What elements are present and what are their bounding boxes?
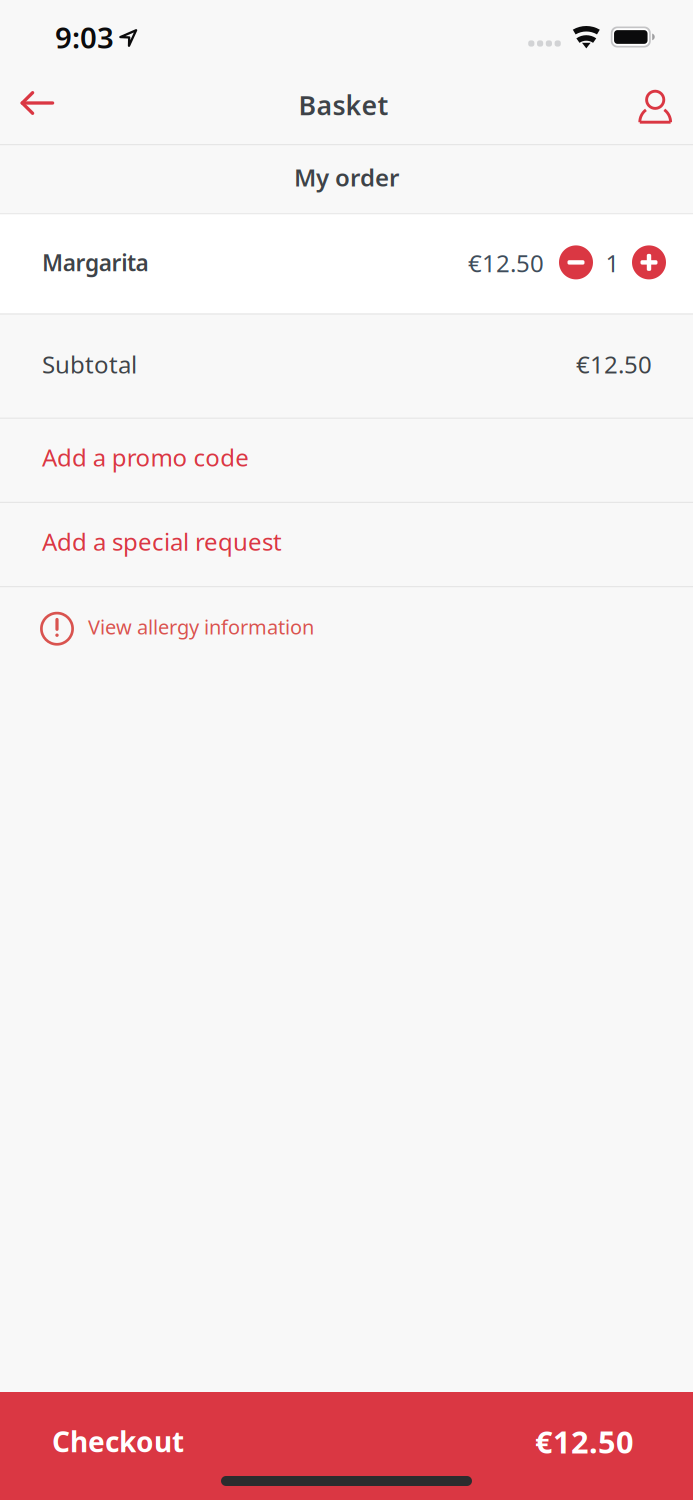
staticText: My order: [294, 161, 399, 193]
staticText: €12.50: [535, 1421, 634, 1462]
button[interactable]: Back: [0, 77, 78, 134]
button[interactable]: Account: [614, 77, 693, 135]
staticText: Subtotal: [42, 348, 137, 380]
staticText: 9:03: [55, 17, 114, 56]
staticText: €12.50: [576, 348, 652, 380]
staticText: 1: [605, 247, 619, 279]
button[interactable]: Increase quantity: [632, 242, 666, 282]
button[interactable]: Add a promo code: [0, 419, 693, 502]
button[interactable]: View allergy information: [0, 587, 693, 672]
staticText: Add a special request: [42, 526, 282, 557]
staticText: Basket: [298, 87, 388, 123]
staticText: Add a promo code: [42, 441, 249, 473]
button[interactable]: Decrease quantity: [559, 242, 593, 282]
button[interactable]: Add a special request: [0, 503, 693, 586]
staticText: Checkout: [52, 1423, 184, 1460]
staticText: View allergy information: [88, 613, 314, 640]
staticText: Margarita: [42, 247, 149, 277]
staticText: €12.50: [468, 247, 544, 279]
button[interactable]: Checkout: [0, 1392, 693, 1500]
